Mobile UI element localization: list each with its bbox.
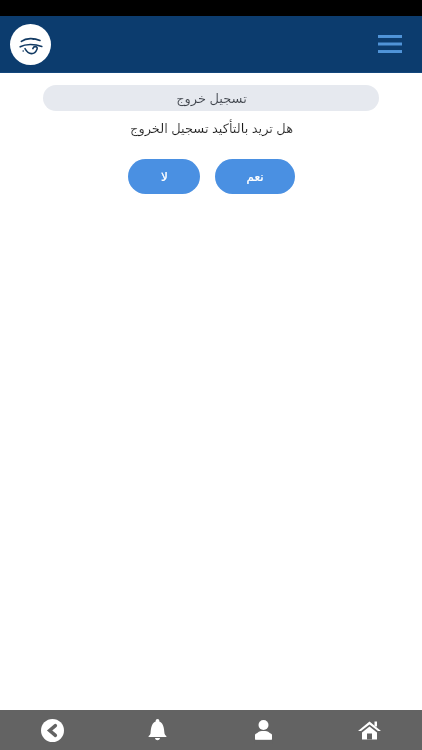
button[interactable]: Logo	[10, 24, 51, 65]
staticText: نعم	[246, 170, 264, 184]
staticText: هل تريد بالتأكيد تسجيل الخروج	[130, 119, 293, 137]
button[interactable]: Menu	[372, 26, 408, 62]
button[interactable]: نعم	[215, 159, 295, 194]
button[interactable]: تسجيل خروج	[43, 85, 379, 111]
button[interactable]: Back	[0, 710, 105, 750]
staticText: تسجيل خروج	[176, 89, 247, 107]
button[interactable]: Profile	[210, 710, 316, 750]
button[interactable]: لا	[128, 159, 200, 194]
staticText: لا	[161, 170, 168, 184]
button[interactable]: Notifications	[105, 710, 210, 750]
button[interactable]: Home	[316, 710, 422, 750]
